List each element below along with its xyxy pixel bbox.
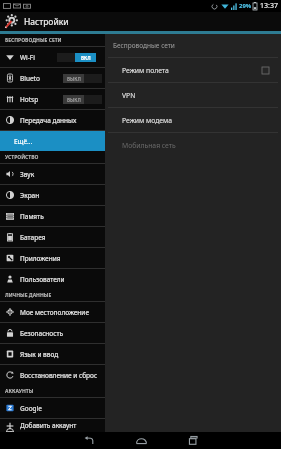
staticText: Режим модема: [122, 116, 173, 125]
staticText: Восстановление и сброс: [20, 371, 98, 380]
staticText: Bluetoo: [20, 74, 41, 83]
staticText: Язык и ввод: [20, 350, 59, 359]
button[interactable]: Bluetoo: [0, 68, 105, 88]
staticText: VPN: [122, 91, 136, 100]
staticText: Пользователи: [20, 275, 65, 284]
other: Settings: [4, 14, 19, 29]
button[interactable]: Батарея: [0, 227, 105, 247]
staticText: АККАУНТЫ: [5, 388, 34, 395]
button[interactable]: Режим полета: [105, 58, 281, 82]
button[interactable]: Передача данных: [0, 110, 105, 130]
button[interactable]: Язык и ввод: [0, 344, 105, 364]
staticText: 29%: [239, 2, 252, 10]
staticText: Мобильная сеть: [122, 141, 176, 150]
staticText: ЛИЧНЫЕ ДАННЫЕ: [5, 292, 52, 299]
staticText: ВЫКЛ: [67, 97, 81, 103]
staticText: Google: [20, 404, 42, 413]
staticText: Передача данных: [20, 116, 77, 125]
button[interactable]: Recent apps: [167, 432, 219, 449]
staticText: Экран: [20, 191, 40, 200]
button[interactable]: Восстановление и сброс: [0, 365, 105, 385]
staticText: БЕСПРОВОДНЫЕ СЕТИ: [5, 37, 62, 44]
button[interactable]: Ещё...: [0, 131, 105, 151]
button[interactable]: Режим полета: [262, 67, 269, 74]
button[interactable]: Добавить аккаунт: [0, 419, 105, 432]
button[interactable]: ВЫКЛ: [63, 95, 102, 104]
staticText: Добавить аккаунт: [20, 421, 77, 430]
staticText: Безопасность: [20, 329, 63, 338]
staticText: Настройки: [24, 16, 69, 28]
button[interactable]: Память: [0, 206, 105, 226]
button[interactable]: Режим модема: [105, 108, 281, 132]
staticText: Память: [20, 212, 44, 221]
staticText: ВКЛ: [81, 55, 91, 61]
button: Мобильная сеть: [105, 133, 281, 157]
button[interactable]: ВКЛ: [57, 53, 96, 62]
staticText: Беспроводные сети: [113, 41, 175, 50]
button[interactable]: Home: [115, 432, 167, 449]
button[interactable]: Приложения: [0, 248, 105, 268]
staticText: УСТРОЙСТВО: [5, 154, 39, 161]
staticText: Hotspo: [20, 95, 41, 104]
button[interactable]: Google: [0, 398, 105, 418]
staticText: Звук: [20, 170, 35, 179]
button[interactable]: ВЫКЛ: [63, 74, 102, 83]
button[interactable]: Безопасность: [0, 323, 105, 343]
staticText: Мое местоположение: [20, 308, 89, 317]
button[interactable]: Back: [63, 432, 115, 449]
button[interactable]: Hotspo: [0, 89, 105, 109]
button[interactable]: Экран: [0, 185, 105, 205]
staticText: Режим полета: [122, 66, 169, 75]
staticText: ВЫКЛ: [67, 76, 81, 82]
staticText: 13:37: [260, 1, 278, 11]
staticText: Приложения: [20, 254, 61, 263]
button[interactable]: Мое местоположение: [0, 302, 105, 322]
staticText: Батарея: [20, 233, 46, 242]
button[interactable]: Пользователи: [0, 269, 105, 289]
button[interactable]: VPN: [105, 83, 281, 107]
staticText: Ещё...: [14, 137, 33, 146]
button[interactable]: Wi-Fi: [0, 47, 105, 67]
staticText: Wi-Fi: [20, 53, 35, 62]
button[interactable]: Звук: [0, 164, 105, 184]
